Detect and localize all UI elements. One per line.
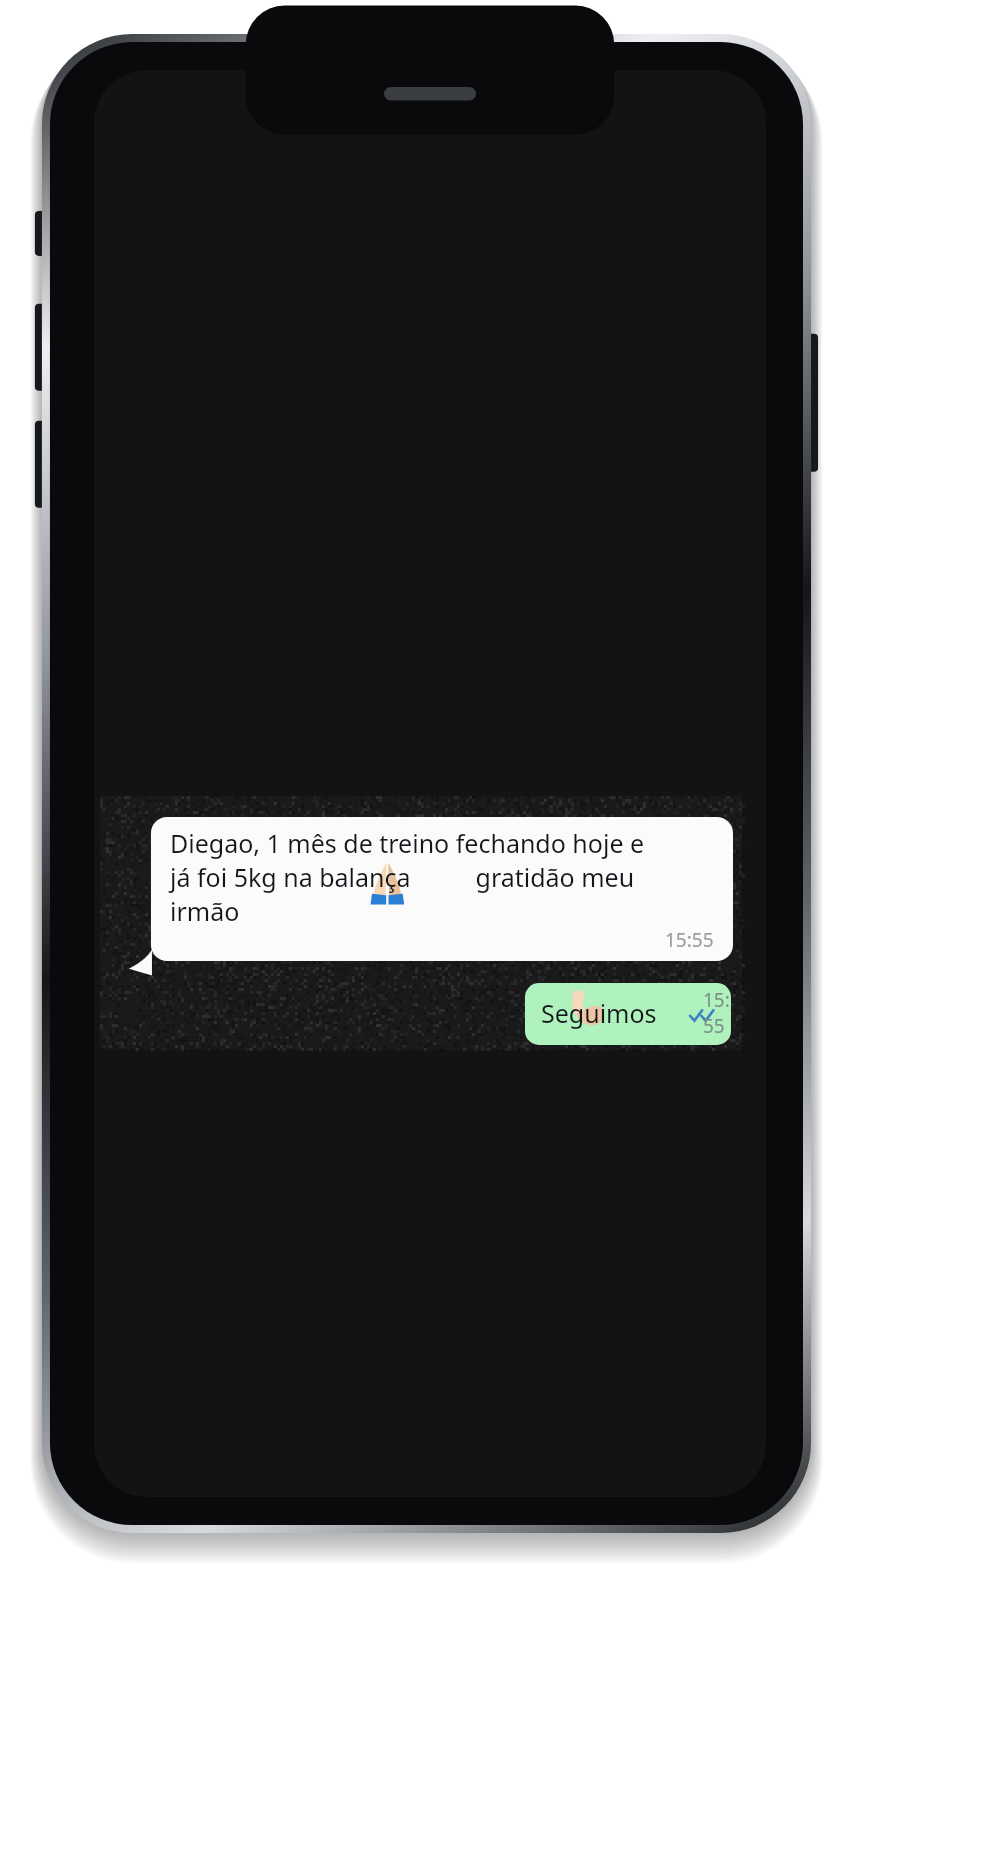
button[interactable]: Seguimos [525,982,731,1044]
staticText: 15:55 [665,927,714,953]
staticText: irmão [170,894,240,928]
other: Earpiece speaker [386,90,476,112]
staticText: Diegao, 1 mês de treino fechando hoje e [170,826,645,860]
staticText: já foi 5kg na balança gratidão meu [170,860,635,894]
button[interactable]: Diegao, 1 mês de treino fechando hoje e [151,817,733,961]
staticText: 15:55 [703,987,731,1039]
staticText: Seguimos [541,996,657,1030]
